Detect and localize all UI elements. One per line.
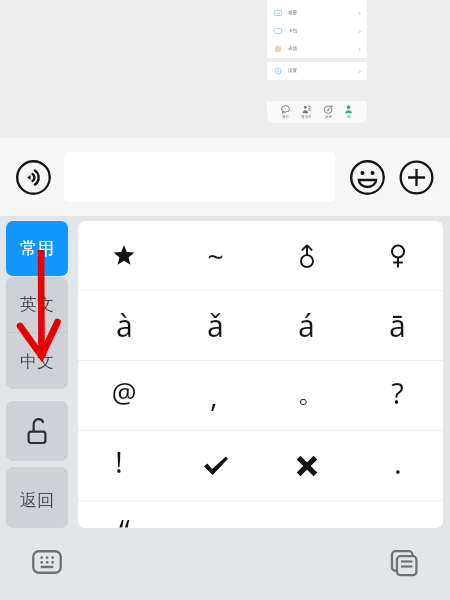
button[interactable] bbox=[261, 431, 352, 500]
staticText: 我 bbox=[347, 115, 351, 119]
button[interactable]: ! bbox=[78, 431, 170, 500]
staticText: @ bbox=[111, 373, 137, 411]
staticText: 中文 bbox=[20, 351, 54, 372]
button[interactable]: 。 bbox=[261, 361, 352, 430]
staticText: 卡包 bbox=[288, 28, 298, 34]
button[interactable]: ā bbox=[352, 291, 443, 360]
button[interactable] bbox=[78, 221, 170, 290]
button[interactable]: Voice input bbox=[15, 159, 51, 195]
button[interactable]: More bbox=[398, 159, 434, 195]
staticText: à bbox=[116, 305, 133, 346]
button[interactable]: ~ bbox=[170, 221, 261, 290]
button[interactable]: à bbox=[78, 291, 170, 360]
button[interactable]: , bbox=[170, 361, 261, 430]
button[interactable]: ǎ bbox=[170, 291, 261, 360]
staticText: , bbox=[210, 376, 218, 415]
staticText: · bbox=[394, 451, 402, 490]
button[interactable]: á bbox=[261, 291, 352, 360]
button[interactable]: 返回 bbox=[6, 467, 68, 528]
button[interactable]: Emoji bbox=[349, 159, 385, 195]
staticText: 常用 bbox=[20, 238, 54, 259]
staticText: ā bbox=[389, 305, 406, 346]
staticText: “ bbox=[119, 510, 130, 528]
staticText: ! bbox=[115, 442, 123, 481]
staticText: ? bbox=[391, 373, 404, 412]
staticText: 相册 bbox=[288, 10, 298, 16]
staticText: ~ bbox=[207, 236, 224, 275]
staticText: 微信 bbox=[282, 115, 289, 119]
button[interactable]: · bbox=[352, 431, 443, 500]
staticText: 返回 bbox=[20, 490, 54, 511]
staticText: 英文 bbox=[20, 294, 54, 315]
button[interactable]: Clipboard bbox=[385, 544, 421, 580]
button[interactable]: @ bbox=[78, 361, 170, 430]
button[interactable]: 中文 bbox=[6, 333, 68, 389]
button[interactable]: Unlock bbox=[6, 401, 68, 461]
button[interactable]: “ bbox=[78, 501, 170, 528]
button[interactable] bbox=[261, 221, 352, 290]
staticText: 设置 bbox=[288, 68, 298, 74]
button[interactable] bbox=[352, 221, 443, 290]
button[interactable]: ? bbox=[352, 361, 443, 430]
button[interactable]: 英文 bbox=[6, 277, 68, 332]
staticText: 表情 bbox=[288, 46, 298, 52]
staticText: 通讯录 bbox=[301, 115, 312, 119]
button[interactable]: Switch keyboard bbox=[29, 544, 65, 580]
staticText: ǎ bbox=[207, 305, 224, 346]
staticText: á bbox=[298, 305, 315, 346]
button[interactable] bbox=[170, 431, 261, 500]
staticText: 。 bbox=[297, 373, 327, 411]
staticText: 发现 bbox=[325, 115, 332, 119]
button[interactable]: 常用 bbox=[6, 221, 68, 276]
